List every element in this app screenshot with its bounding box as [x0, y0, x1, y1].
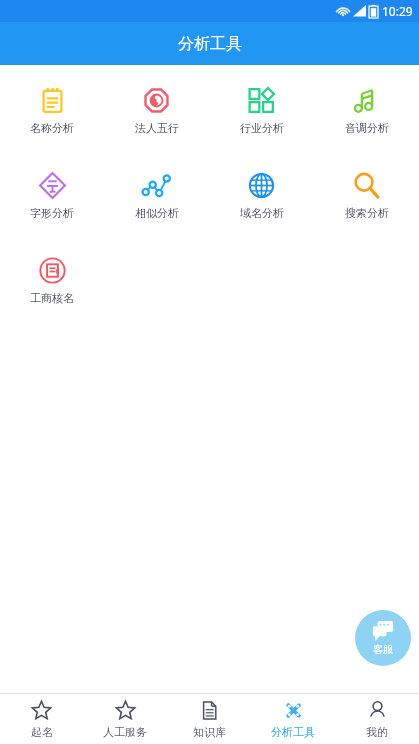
button[interactable]: 域名分析	[209, 164, 314, 228]
staticText: 分析工具	[178, 34, 242, 54]
button[interactable]: 法人五行	[104, 79, 209, 143]
button[interactable]: 搜索分析	[314, 164, 419, 228]
button[interactable]: 人工服务	[83, 694, 167, 744]
staticText: 起名	[31, 725, 53, 739]
staticText: 名称分析	[30, 121, 74, 135]
staticText: 相似分析	[135, 206, 179, 220]
staticText: 人工服务	[103, 725, 147, 739]
button[interactable]: 相似分析	[104, 164, 209, 228]
staticText: 分析工具	[271, 725, 315, 739]
staticText: 我的	[366, 725, 388, 739]
staticText: 搜索分析	[345, 206, 389, 220]
button[interactable]: 知识库	[167, 694, 251, 744]
staticText: 客服	[373, 643, 393, 656]
staticText: 字形分析	[30, 206, 74, 220]
staticText: 行业分析	[240, 121, 284, 135]
button[interactable]: 音调分析	[314, 79, 419, 143]
button[interactable]: 客服	[355, 610, 411, 666]
button[interactable]: 名称分析	[0, 79, 104, 143]
button[interactable]: 工商核名	[0, 249, 104, 313]
button[interactable]: 起名	[0, 694, 83, 744]
staticText: 法人五行	[135, 121, 179, 135]
staticText: 知识库	[193, 725, 226, 739]
button[interactable]: 分析工具	[251, 694, 335, 744]
button[interactable]: 字形分析	[0, 164, 104, 228]
staticText: 工商核名	[30, 291, 74, 305]
button[interactable]: 行业分析	[209, 79, 314, 143]
staticText: 域名分析	[240, 206, 284, 220]
staticText: 音调分析	[345, 121, 389, 135]
staticText: 10:29	[382, 3, 413, 19]
button[interactable]: 我的	[335, 694, 419, 744]
